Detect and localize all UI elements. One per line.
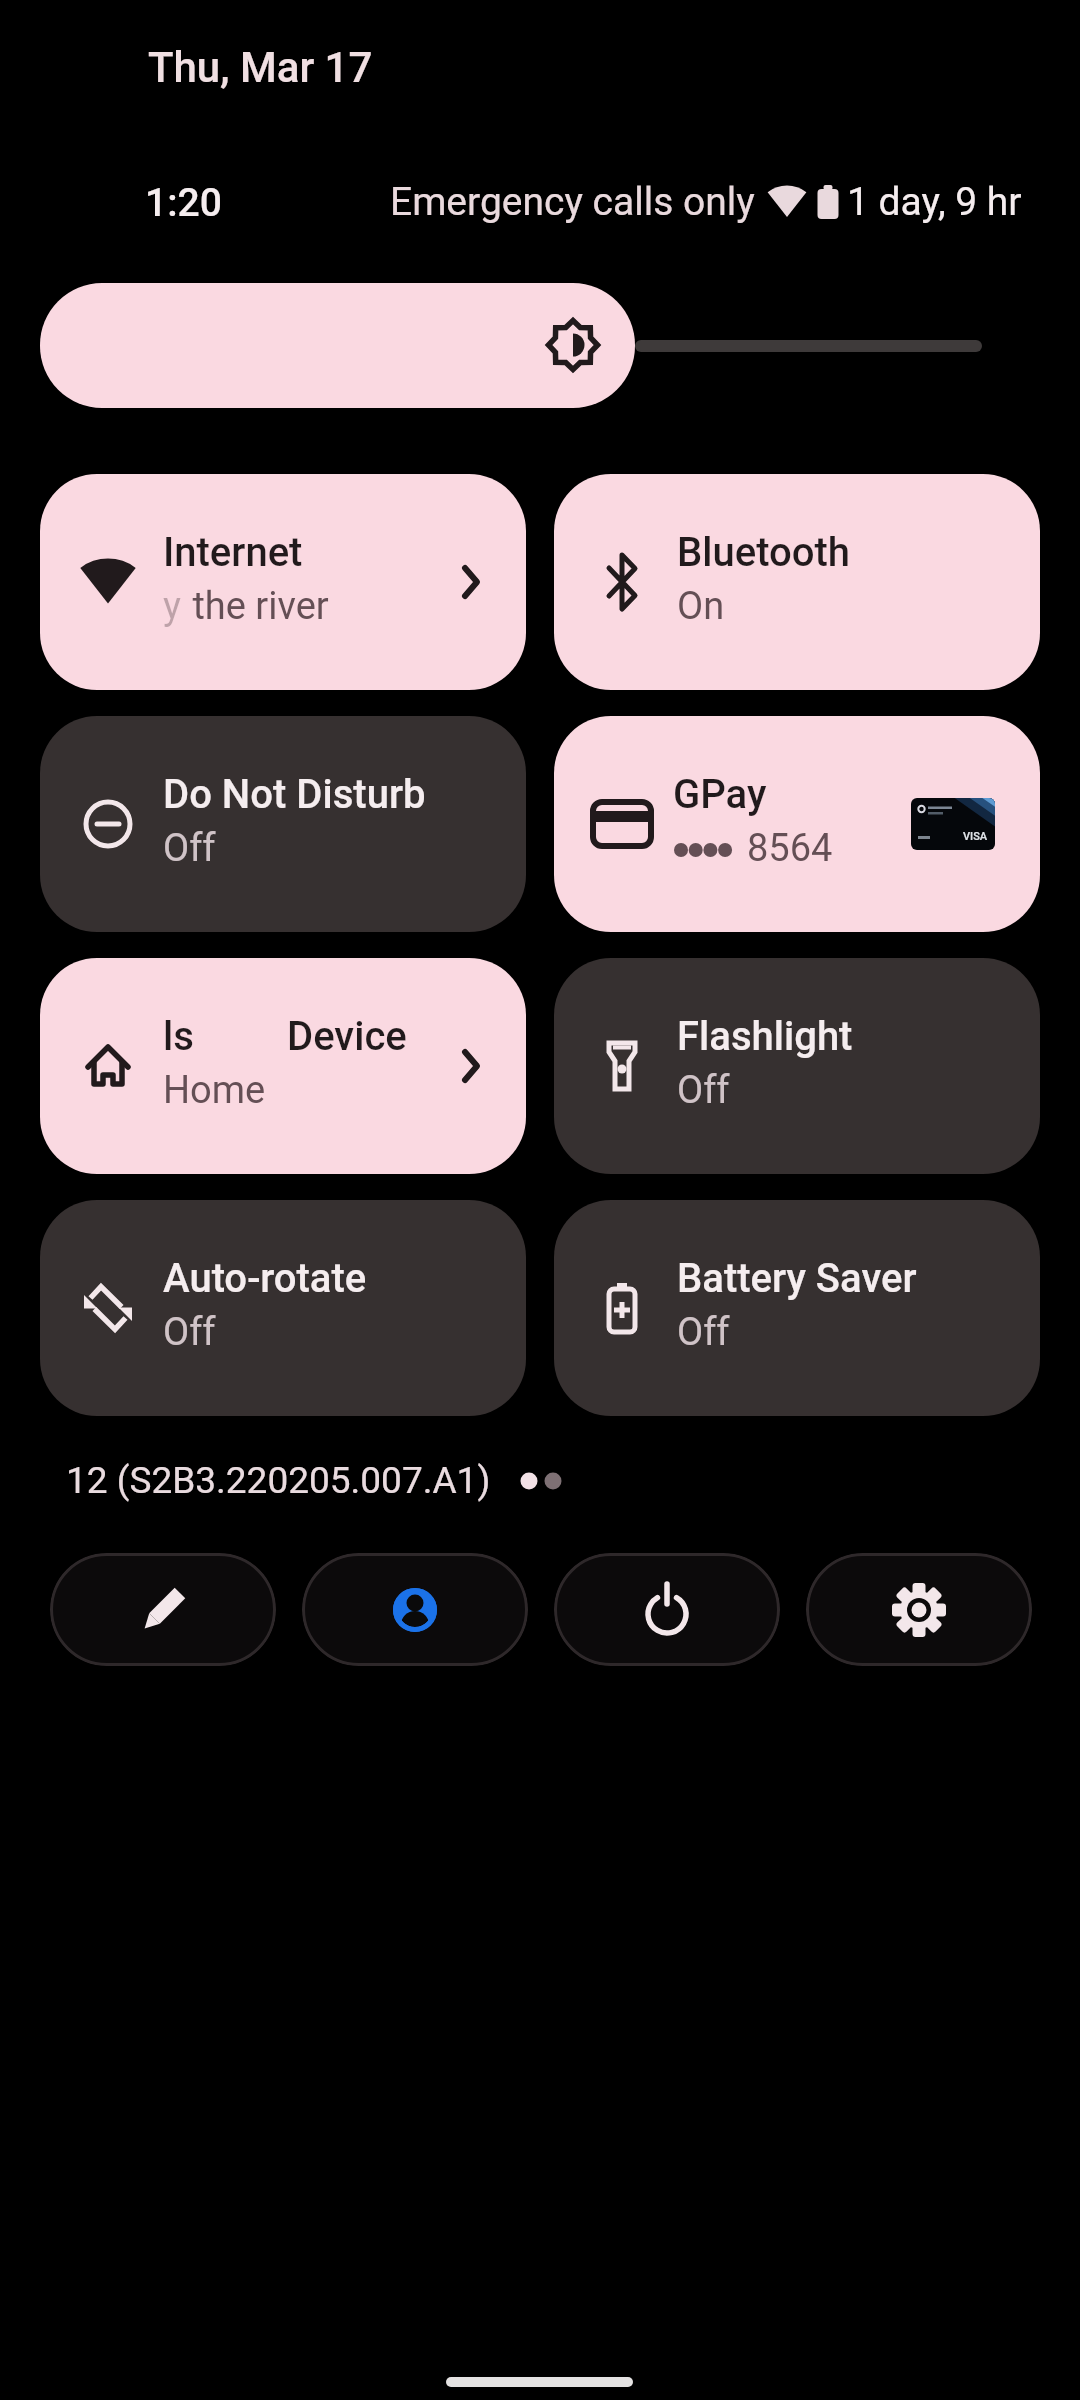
- button[interactable]: Battery Saver: [554, 1200, 1040, 1416]
- staticText: VISA: [963, 830, 988, 843]
- staticText: Auto-rotate: [163, 1255, 367, 1302]
- staticText: 1 day, 9 hr: [847, 179, 1022, 225]
- button[interactable]: Internet: [40, 474, 526, 690]
- staticText: Off: [163, 826, 216, 871]
- button[interactable]: Auto-rotate: [40, 1200, 526, 1416]
- staticText: 8564: [747, 826, 833, 871]
- staticText: Do Not Disturb: [163, 771, 426, 818]
- staticText: Battery Saver: [677, 1255, 917, 1302]
- staticText: On: [677, 584, 725, 629]
- button[interactable]: [554, 1553, 780, 1666]
- button[interactable]: [50, 1553, 276, 1666]
- staticText: y: [163, 584, 181, 629]
- staticText: Bluetooth: [677, 529, 850, 576]
- staticText: Thu, Mar 17: [148, 43, 373, 92]
- button[interactable]: [806, 1553, 1032, 1666]
- staticText: Home: [163, 1068, 266, 1113]
- staticText: 12 (S2B3.220205.007.A1): [66, 1459, 491, 1502]
- button[interactable]: ls: [40, 958, 526, 1174]
- staticText: ls: [163, 1013, 194, 1060]
- button[interactable]: GPay: [554, 716, 1040, 932]
- staticText: the river: [183, 584, 329, 629]
- button[interactable]: Bluetooth: [554, 474, 1040, 690]
- staticText: GPay: [673, 771, 767, 818]
- button[interactable]: [302, 1553, 528, 1666]
- staticText: 1:20: [145, 180, 222, 226]
- staticText: Off: [677, 1310, 730, 1355]
- button[interactable]: Do Not Disturb: [40, 716, 526, 932]
- button[interactable]: Flashlight: [554, 958, 1040, 1174]
- staticText: Off: [677, 1068, 730, 1113]
- staticText: Emergency calls only: [390, 179, 755, 225]
- staticText: Internet: [163, 529, 303, 576]
- staticText: Flashlight: [677, 1013, 853, 1060]
- button[interactable]: [40, 283, 635, 408]
- staticText: Device: [287, 1013, 407, 1060]
- staticText: Off: [163, 1310, 216, 1355]
